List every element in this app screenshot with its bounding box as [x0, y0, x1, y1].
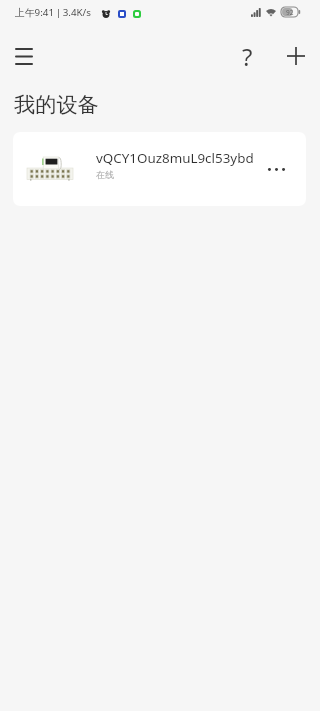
button[interactable]: Add [276, 36, 316, 76]
staticText: ? [242, 40, 253, 73]
staticText: 我的设备 [14, 92, 99, 119]
button[interactable]: vQCY1Ouz8muL9cl53ybd [13, 132, 306, 206]
staticText: vQCY1Ouz8muL9cl53ybd [96, 149, 254, 167]
staticText: 92 [286, 8, 294, 17]
staticText: 上午9:41 | 3.4K/s [15, 6, 91, 19]
button[interactable]: More options [257, 147, 295, 191]
button[interactable]: Help [227, 36, 267, 76]
staticText: 在线 [96, 169, 114, 180]
button[interactable]: Menu [4, 36, 44, 76]
